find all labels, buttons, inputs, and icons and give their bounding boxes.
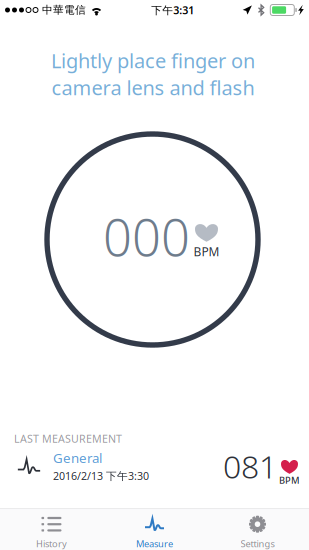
staticText: 000 <box>103 203 190 270</box>
button[interactable]: Measure <box>103 509 206 550</box>
staticText: BPM <box>193 243 219 259</box>
staticText: 081 <box>223 445 277 487</box>
staticText: Lightly place finger on <box>51 47 255 74</box>
staticText: 2016/2/13 下午3:30 <box>53 469 149 483</box>
staticText: BPM <box>279 474 300 486</box>
staticText: camera lens and flash <box>51 74 254 101</box>
staticText: LAST MEASUREMENT <box>14 431 122 446</box>
button[interactable]: General <box>0 449 309 483</box>
staticText: Measure <box>136 537 173 550</box>
staticText: Settings <box>240 537 274 550</box>
button[interactable]: Settings <box>206 509 309 550</box>
staticText: History <box>36 537 67 550</box>
staticText: General <box>53 449 102 467</box>
staticText: 中華電信 <box>42 3 86 16</box>
staticText: 下午3:31 <box>151 3 194 17</box>
button[interactable]: History <box>0 509 103 550</box>
